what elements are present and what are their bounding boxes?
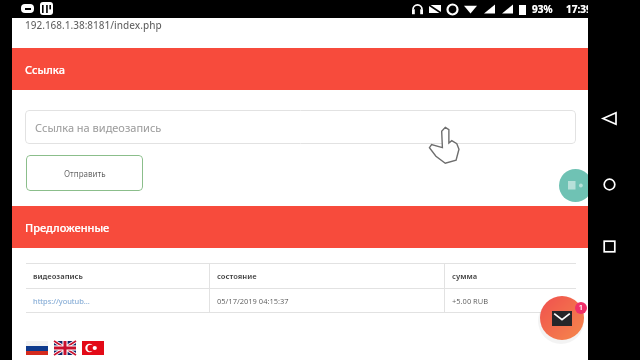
staticText: состояние — [217, 271, 257, 281]
button[interactable]: Messages — [540, 296, 584, 340]
staticText: 17:39 — [566, 2, 592, 16]
button[interactable]: Предложенные — [12, 206, 588, 248]
button[interactable]: Ссылка — [12, 48, 588, 90]
button[interactable]: https://youtub... — [26, 289, 576, 312]
staticText: сумма — [452, 271, 478, 281]
button[interactable]: Russian — [26, 341, 48, 355]
staticText: видеозапись — [33, 271, 83, 281]
staticText: 192.168.1.38:8181/index.php — [25, 18, 162, 32]
button[interactable]: Chat support — [559, 169, 592, 202]
staticText: 93% — [532, 2, 553, 16]
button[interactable]: Turkish — [82, 341, 104, 355]
staticText: +5.00 RUB — [452, 296, 489, 306]
button[interactable]: English — [54, 341, 76, 355]
staticText: 05/17/2019 04:15:37 — [217, 296, 289, 306]
staticText: Отправить — [64, 168, 106, 179]
button[interactable]: Home — [596, 171, 622, 197]
button[interactable]: Ссылка на видеозапись — [25, 110, 576, 144]
other: Notification — [21, 4, 34, 13]
button[interactable]: Recents — [596, 233, 622, 259]
button[interactable]: Back — [596, 105, 622, 131]
staticText: Ссылка — [25, 62, 65, 77]
button[interactable]: Отправить — [26, 155, 143, 191]
staticText: Ссылка на видеозапись — [35, 120, 162, 135]
staticText: https://youtub... — [33, 296, 90, 306]
other: Notification — [40, 2, 53, 15]
staticText: 1 — [579, 303, 584, 313]
staticText: Предложенные — [25, 220, 110, 235]
